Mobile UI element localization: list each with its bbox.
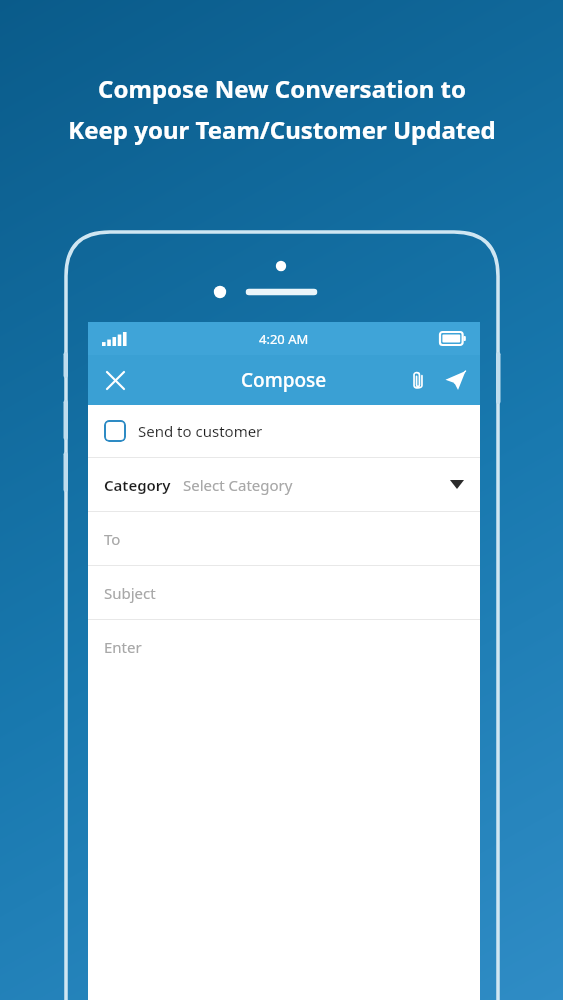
staticText: To [104,529,121,549]
staticText: Enter [104,637,142,657]
button[interactable]: Enter [88,620,480,673]
staticText: Subject [104,583,156,603]
staticText: Compose [241,367,327,393]
staticText: Select Category [183,475,293,495]
staticText: Category [104,475,171,495]
button[interactable]: Close [94,359,136,401]
button[interactable]: Subject [88,566,480,619]
button[interactable]: To [88,512,480,565]
button[interactable]: Attach file [400,362,436,398]
button[interactable]: Send to customer [88,405,480,457]
staticText: Compose New Conversation to [98,72,466,105]
staticText: Send to customer [138,421,263,441]
button[interactable]: Send [436,361,474,399]
button[interactable]: Category [88,458,480,511]
staticText: Keep your Team/Customer Updated [68,113,496,146]
staticText: 4:20 AM [259,330,309,348]
